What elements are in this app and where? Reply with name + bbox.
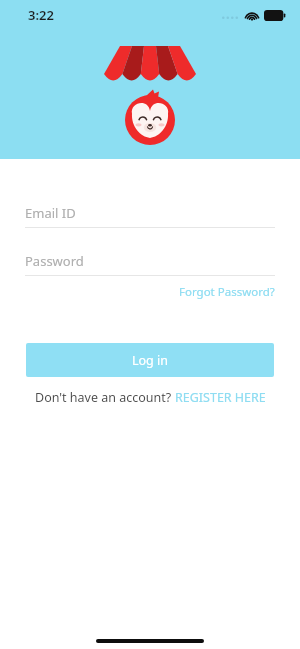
button[interactable]: REGISTER HERE xyxy=(175,389,266,406)
staticText: 3:22 xyxy=(28,6,54,24)
staticText: Log in xyxy=(132,352,169,369)
button[interactable]: Email ID xyxy=(25,204,275,228)
staticText: Email ID xyxy=(25,204,76,222)
staticText: Password xyxy=(25,252,84,270)
button[interactable]: Forgot Password? xyxy=(179,282,275,302)
staticText: Don't have an account? xyxy=(35,389,175,406)
staticText: Forgot Password? xyxy=(179,284,275,300)
button[interactable]: Password xyxy=(25,252,275,276)
button[interactable]: Log in xyxy=(26,343,274,377)
staticText: REGISTER HERE xyxy=(175,389,266,406)
